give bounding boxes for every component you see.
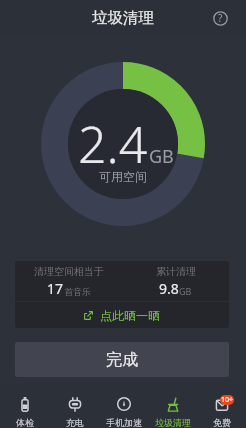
staticText: 完成 <box>106 350 138 370</box>
staticText: 点此晒一晒 <box>100 308 160 323</box>
staticText: 累计清理 <box>156 265 196 278</box>
button[interactable]: Help <box>207 5 233 31</box>
button[interactable]: 充电 <box>50 385 99 428</box>
staticText: 9.8 <box>159 279 179 298</box>
staticText: 可用空间 <box>99 169 147 184</box>
staticText: 充电 <box>66 417 84 428</box>
staticText: 体检 <box>16 417 34 428</box>
button[interactable]: 点此晒一晒 <box>15 302 229 328</box>
staticText: 垃圾清理 <box>155 417 191 428</box>
staticText: 垃圾清理 <box>92 8 154 28</box>
staticText: 首音乐 <box>64 286 91 297</box>
staticText: 清理空间相当于 <box>34 265 104 278</box>
button[interactable]: 手机加速 <box>99 385 148 428</box>
staticText: 10+ <box>221 395 234 405</box>
staticText: 2.4 <box>78 110 148 178</box>
staticText: 手机加速 <box>106 417 142 428</box>
staticText: ? <box>218 11 223 25</box>
staticText: 免费 <box>213 417 231 428</box>
button[interactable]: 垃圾清理 <box>148 385 197 428</box>
button[interactable]: 完成 <box>15 342 229 377</box>
button[interactable]: 体检 <box>0 385 50 428</box>
button[interactable]: 免费 10+ <box>197 385 246 428</box>
staticText: GB <box>149 144 174 169</box>
staticText: GB <box>179 285 192 297</box>
staticText: 17 <box>47 279 64 298</box>
